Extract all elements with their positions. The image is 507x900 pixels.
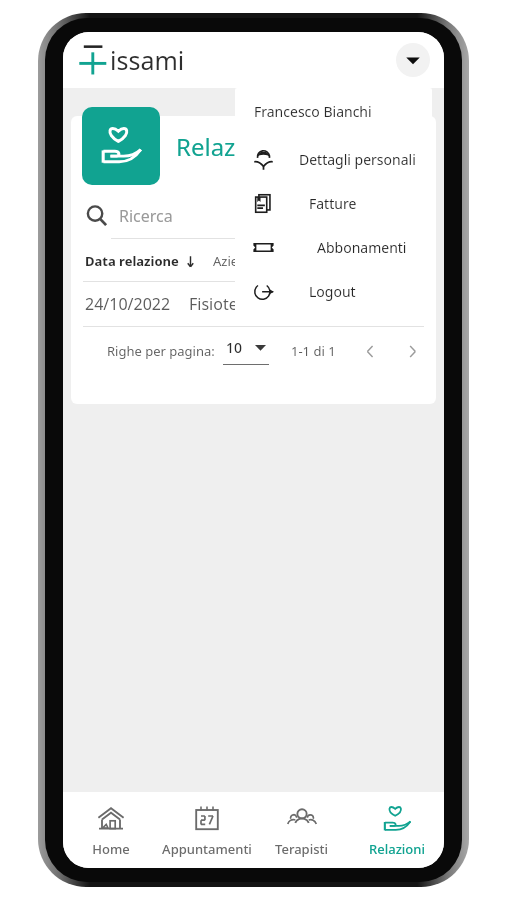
staticText: 24/10/2022 bbox=[85, 293, 171, 315]
staticText: Ricerca bbox=[119, 205, 173, 227]
button[interactable]: Pagina successiva bbox=[398, 337, 426, 365]
button[interactable]: Appuntamenti bbox=[159, 792, 254, 868]
staticText: Logout bbox=[309, 282, 356, 301]
button[interactable]: Dettagli personali bbox=[235, 137, 432, 181]
staticText: Data relazione bbox=[85, 252, 179, 270]
staticText: Relazioni bbox=[176, 130, 278, 163]
button[interactable]: 10 bbox=[223, 338, 269, 365]
button[interactable]: Apri menu account bbox=[396, 43, 430, 77]
staticText: Fisioterapia Rossi bbox=[189, 293, 320, 315]
button[interactable]: Ricerca bbox=[85, 194, 422, 238]
staticText: Home bbox=[92, 840, 130, 858]
staticText: issami bbox=[110, 43, 185, 77]
staticText: 1-1 di 1 bbox=[291, 342, 336, 360]
button[interactable]: Relazioni bbox=[349, 792, 444, 868]
button[interactable]: 24/10/2022 bbox=[71, 282, 436, 326]
staticText: Terapisti bbox=[275, 840, 328, 858]
staticText: 10 bbox=[226, 338, 243, 357]
button[interactable]: Home bbox=[63, 792, 159, 868]
staticText: Appuntamenti bbox=[162, 840, 252, 858]
button[interactable]: Data relazione bbox=[85, 252, 197, 270]
staticText: Righe per pagina: bbox=[107, 342, 215, 360]
button[interactable]: Azienda bbox=[213, 252, 262, 270]
button[interactable]: Fatture bbox=[235, 181, 432, 225]
button[interactable]: Abbonamenti bbox=[235, 225, 432, 269]
staticText: Abbonamenti bbox=[317, 238, 407, 257]
button[interactable]: Terapisti bbox=[254, 792, 349, 868]
staticText: Dettagli personali bbox=[299, 150, 416, 169]
staticText: Relazioni bbox=[369, 840, 425, 858]
button[interactable]: Pagina precedente bbox=[356, 337, 384, 365]
button[interactable]: issami bbox=[79, 43, 185, 77]
staticText: Francesco Bianchi bbox=[254, 102, 372, 121]
staticText: Fatture bbox=[309, 194, 357, 213]
button[interactable]: Logout bbox=[235, 269, 432, 313]
